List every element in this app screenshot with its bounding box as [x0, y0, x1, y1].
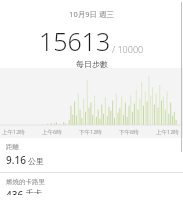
button[interactable]: 每日步數圖表	[0, 68, 183, 138]
staticText: / 10000	[112, 43, 144, 55]
staticText: 公里	[28, 156, 44, 166]
button[interactable]: 距離	[0, 138, 183, 172]
staticText: 下午6時	[119, 128, 139, 136]
button[interactable]: 燃燒的卡路里	[0, 173, 183, 200]
staticText: 10月9日 週三	[69, 9, 114, 19]
staticText: 下午12時	[79, 128, 102, 136]
staticText: 上午12時	[2, 128, 25, 136]
staticText: 千卡	[26, 188, 42, 194]
staticText: 9.16	[6, 153, 26, 167]
staticText: 上午12時	[156, 128, 179, 136]
button[interactable]: 10月9日 週三	[0, 0, 183, 68]
staticText: 436	[6, 188, 24, 195]
staticText: 每日步數	[76, 59, 108, 68]
staticText: 上午6時	[42, 128, 62, 136]
staticText: 距離	[6, 143, 19, 151]
staticText: 燃燒的卡路里	[6, 178, 45, 186]
staticText: 15613	[39, 24, 111, 58]
